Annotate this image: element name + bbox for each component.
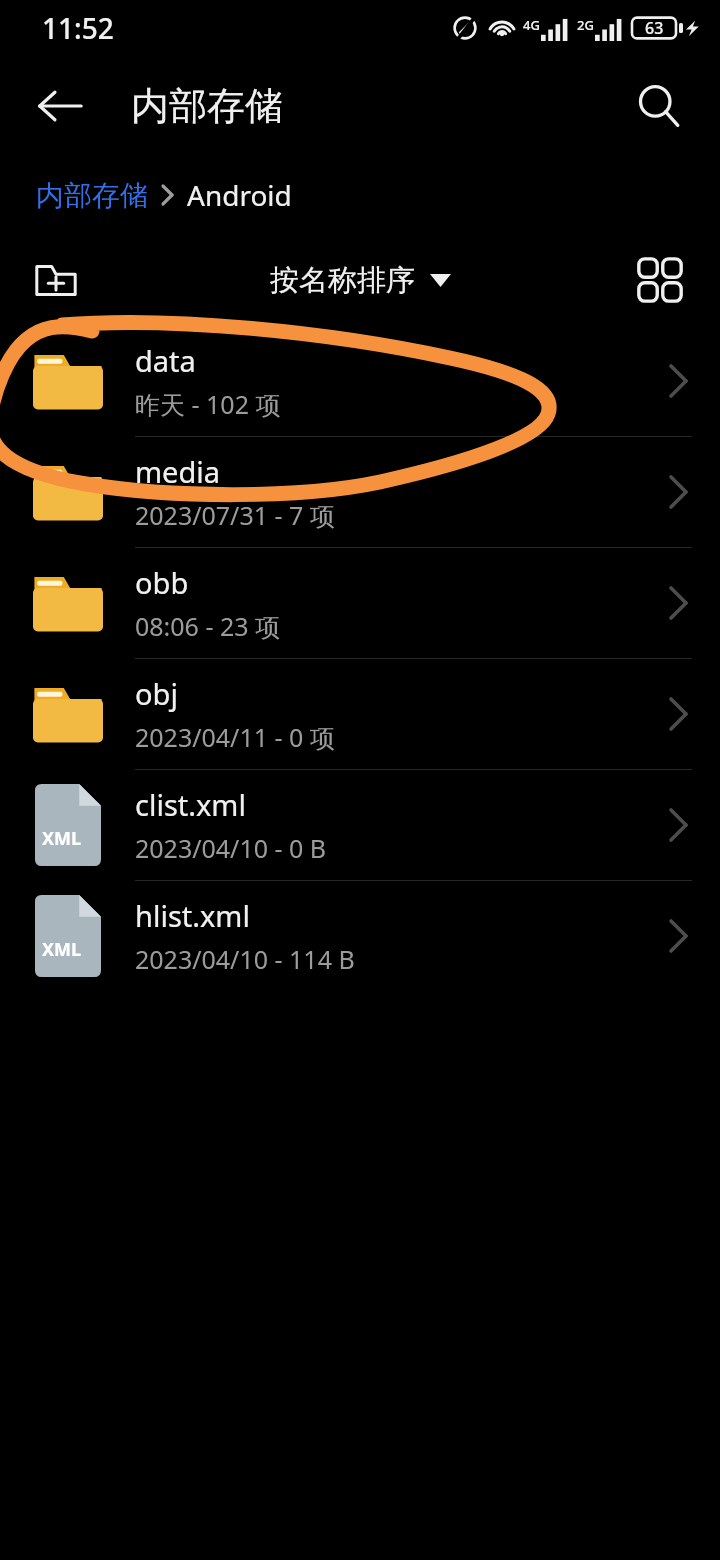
staticText: 11:52 <box>42 9 114 47</box>
staticText: XML <box>42 826 82 851</box>
button[interactable]: 按名称排序 <box>260 254 461 307</box>
button[interactable]: Android <box>187 176 292 214</box>
staticText: 昨天 - 102 项 <box>135 387 281 421</box>
button[interactable]: XML <box>0 770 720 880</box>
staticText: obb <box>135 563 189 602</box>
staticText: 08:06 - 23 项 <box>135 609 281 643</box>
staticText: clist.xml <box>135 785 246 824</box>
button[interactable]: obj <box>0 659 720 769</box>
button[interactable]: obb <box>0 548 720 658</box>
button[interactable]: Search <box>620 68 696 144</box>
staticText: obj <box>135 674 178 713</box>
button[interactable]: Switch to grid view <box>622 242 698 318</box>
staticText: hlist.xml <box>135 896 250 935</box>
button[interactable]: XML <box>0 881 720 991</box>
button[interactable]: Back <box>22 68 98 144</box>
button[interactable]: data <box>0 326 720 436</box>
staticText: 内部存储 <box>131 82 283 130</box>
staticText: 按名称排序 <box>270 262 415 299</box>
button[interactable]: New folder <box>18 242 94 318</box>
staticText: 2023/04/11 - 0 项 <box>135 720 335 754</box>
staticText: 4G <box>523 16 540 34</box>
staticText: 2G <box>577 16 594 34</box>
staticText: 2023/07/31 - 7 项 <box>135 498 335 532</box>
button[interactable]: media <box>0 437 720 547</box>
staticText: 63 <box>645 17 664 39</box>
staticText: Android <box>187 176 292 214</box>
staticText: 2023/04/10 - 114 B <box>135 942 355 976</box>
staticText: 2023/04/10 - 0 B <box>135 831 327 865</box>
staticText: XML <box>42 937 82 962</box>
staticText: data <box>135 341 196 380</box>
button[interactable]: 内部存储 <box>36 178 148 213</box>
staticText: 内部存储 <box>36 178 148 213</box>
staticText: media <box>135 452 221 491</box>
